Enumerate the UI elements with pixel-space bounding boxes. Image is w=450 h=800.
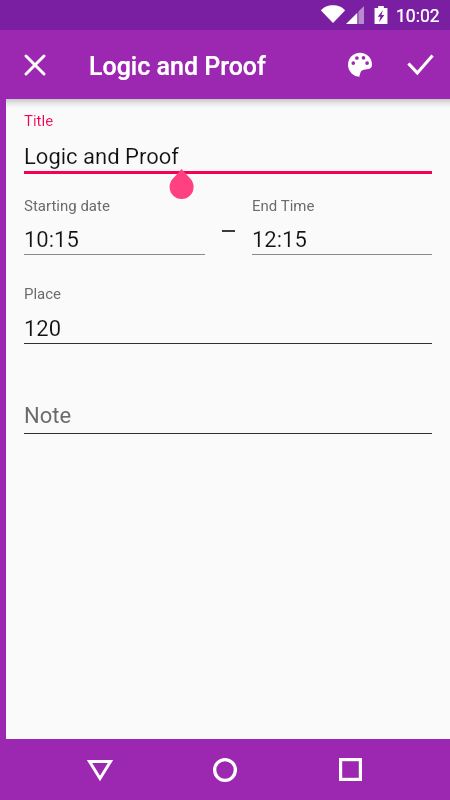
button[interactable]: End Time xyxy=(252,191,432,256)
button[interactable]: Recent apps xyxy=(322,741,378,797)
button[interactable]: Title xyxy=(24,105,432,177)
button[interactable]: Starting date xyxy=(24,191,205,256)
staticText: Logic and Proof xyxy=(24,144,179,170)
button[interactable]: Close xyxy=(11,41,59,89)
button[interactable]: Place xyxy=(24,279,432,345)
staticText: 10:02 xyxy=(396,6,440,27)
button[interactable]: Note xyxy=(24,397,432,435)
staticText: Logic and Proof xyxy=(89,52,266,81)
staticText: Place xyxy=(24,285,62,303)
staticText: 12:15 xyxy=(252,227,307,253)
staticText: End Time xyxy=(252,197,315,215)
button[interactable]: Back xyxy=(72,742,128,798)
button[interactable]: Change colour xyxy=(336,41,383,88)
staticText: Note xyxy=(24,403,72,429)
button[interactable]: Save xyxy=(396,41,444,89)
staticText: Title xyxy=(24,112,54,130)
staticText: 120 xyxy=(24,316,62,342)
button[interactable]: Home xyxy=(197,742,253,798)
staticText: 10:15 xyxy=(24,227,79,253)
staticText: Starting date xyxy=(24,197,110,215)
